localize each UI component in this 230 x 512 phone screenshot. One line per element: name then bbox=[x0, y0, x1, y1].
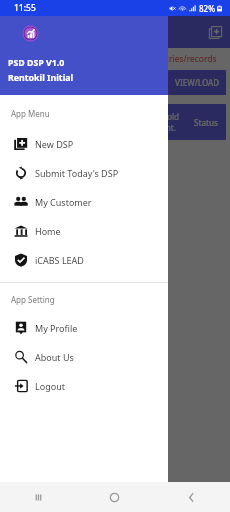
staticText: Home bbox=[35, 225, 61, 237]
button[interactable]: About Us bbox=[0, 342, 168, 371]
staticText: Status bbox=[194, 117, 219, 128]
staticText: Rentokil Initial bbox=[8, 72, 74, 84]
staticText: No entries/records bbox=[142, 53, 217, 65]
button[interactable]: Back bbox=[153, 482, 230, 512]
staticText: iCABS LEAD bbox=[35, 254, 84, 266]
staticText: Submit Today's DSP bbox=[35, 167, 119, 179]
staticText: 82% bbox=[199, 3, 215, 14]
staticText: My Customer bbox=[35, 196, 92, 208]
button[interactable]: Add new entry bbox=[204, 21, 226, 43]
staticText: On hold bbox=[149, 111, 180, 122]
button[interactable]: Recents bbox=[0, 482, 76, 512]
staticText: My Profile bbox=[35, 322, 78, 334]
staticText: appmt. bbox=[149, 122, 176, 133]
button[interactable]: Home bbox=[76, 482, 153, 512]
staticText: Logout bbox=[35, 380, 65, 392]
button[interactable]: Logout bbox=[0, 371, 168, 400]
staticText: App Setting bbox=[11, 294, 55, 305]
button[interactable]: Submit Today's DSP bbox=[0, 158, 168, 187]
staticText: 11:55 bbox=[14, 2, 36, 14]
staticText: VIEW/LOAD bbox=[175, 77, 220, 88]
button[interactable]: On hold bbox=[143, 104, 226, 140]
staticText: App Menu bbox=[11, 108, 50, 119]
button[interactable]: My Profile bbox=[0, 313, 168, 342]
button[interactable]: iCABS LEAD bbox=[0, 245, 168, 274]
staticText: PSD DSP V1.0 bbox=[8, 57, 65, 69]
button[interactable]: Home bbox=[0, 216, 168, 245]
button[interactable]: My Customer bbox=[0, 187, 168, 216]
button[interactable]: New DSP bbox=[0, 129, 168, 158]
button[interactable]: VIEW/LOAD bbox=[168, 70, 226, 95]
staticText: New DSP bbox=[35, 138, 74, 150]
staticText: About Us bbox=[35, 351, 74, 363]
